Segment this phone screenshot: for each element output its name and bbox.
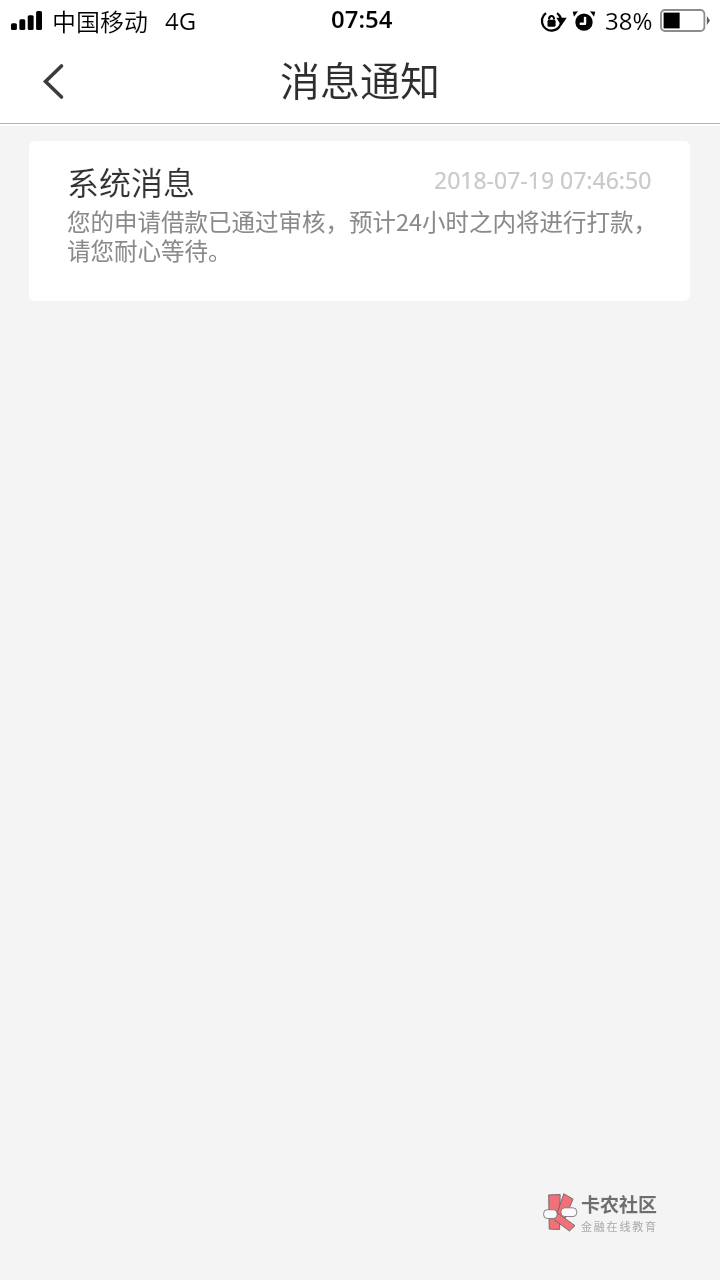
staticText: 中国移动 <box>52 3 148 38</box>
button[interactable]: Back <box>0 41 100 122</box>
staticText: 消息通知 <box>280 50 440 108</box>
staticText: 38% <box>605 4 653 37</box>
staticText: 4G <box>165 4 197 37</box>
button[interactable]: 系统消息 <box>29 141 690 301</box>
staticText: 卡农社区 <box>581 1190 658 1218</box>
staticText: 您的申请借款已通过审核，预计24小时之内将进行打款， 请您耐心等待。 <box>67 208 658 266</box>
staticText: 2018-07-19 07:46:50 <box>434 164 652 195</box>
staticText: 07:54 <box>331 2 393 35</box>
staticText: 金融在线教育 <box>581 1218 658 1234</box>
staticText: 系统消息 <box>67 158 196 204</box>
